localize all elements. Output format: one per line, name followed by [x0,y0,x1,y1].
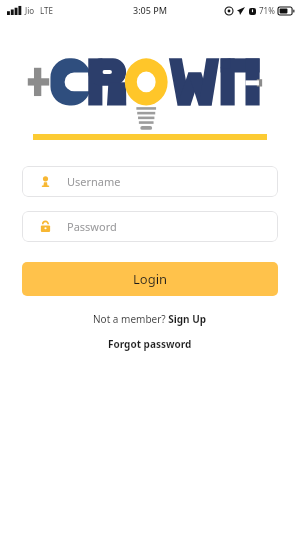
staticText: Password [67,219,117,234]
staticText: Not a member? Sign Up [93,312,207,326]
button[interactable]: Username [22,166,278,197]
button[interactable]: Not a member? Sign Up [0,312,300,326]
staticText: 3:05 PM [133,4,167,16]
staticText: Username [67,174,121,189]
staticText: Jio [25,5,35,16]
staticText: Login [133,270,168,288]
button[interactable]: Password [22,211,278,242]
staticText: 71% [259,5,275,16]
staticText: LTE [40,5,53,16]
button[interactable]: Login [22,262,278,296]
staticText: Forgot password [108,337,192,351]
button[interactable]: Forgot password [0,337,300,351]
